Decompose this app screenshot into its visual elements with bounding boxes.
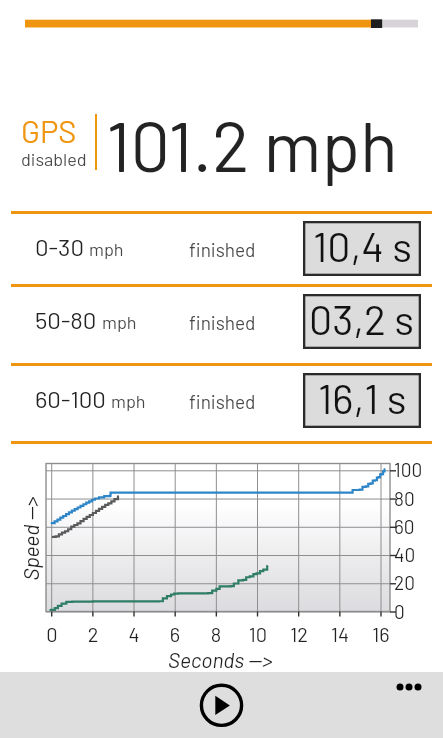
staticText: 0	[40, 622, 64, 646]
staticText: 0-30	[35, 232, 84, 261]
staticText: 60-100	[35, 384, 106, 413]
staticText: finished	[189, 311, 256, 334]
staticText: 50-80	[35, 305, 97, 334]
staticText: 10	[246, 622, 270, 646]
staticText: 80	[394, 487, 415, 510]
staticText: finished	[189, 238, 256, 261]
staticText: GPS	[21, 112, 77, 149]
button[interactable]: More options	[386, 675, 432, 701]
staticText: 40	[394, 543, 416, 566]
staticText: finished	[189, 390, 256, 413]
staticText: mph	[89, 238, 124, 260]
button[interactable]: Start	[195, 678, 248, 731]
staticText: 101.2 mph	[106, 102, 398, 186]
staticText: Speed -->	[18, 496, 43, 581]
staticText: 100	[394, 458, 423, 481]
staticText: 14	[328, 622, 352, 646]
staticText: 6	[163, 622, 187, 646]
staticText: 2	[81, 622, 105, 646]
staticText: 8	[204, 622, 228, 646]
button[interactable]: 0-30	[0, 214, 443, 286]
staticText: 10,4 s	[313, 221, 412, 270]
staticText: disabled	[21, 148, 87, 170]
button[interactable]: 50-80	[0, 287, 443, 359]
staticText: 60	[394, 515, 415, 538]
staticText: 12	[287, 622, 311, 646]
button[interactable]: 60-100	[0, 366, 443, 438]
staticText: mph	[111, 390, 146, 412]
staticText: mph	[102, 311, 137, 333]
staticText: 03,2 s	[309, 294, 415, 343]
staticText: 16,1 s	[318, 373, 407, 422]
staticText: 0	[394, 600, 405, 623]
staticText: 20	[394, 571, 415, 594]
staticText: 4	[122, 622, 146, 646]
staticText: 16	[369, 622, 393, 646]
staticText: Seconds -->	[168, 647, 273, 672]
